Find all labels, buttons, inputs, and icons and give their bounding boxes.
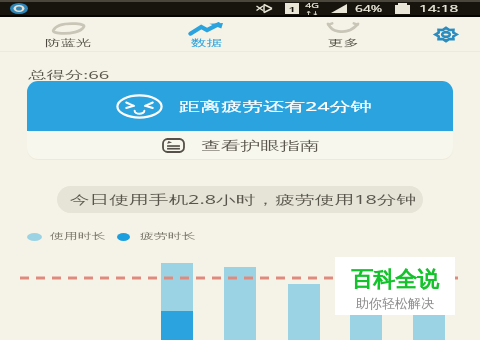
staticText: 今日使用手机2.8小时，疲劳使用18分钟 (70, 191, 416, 208)
staticText: 4G (305, 1, 320, 10)
staticText: 百科全说 (351, 266, 439, 294)
button[interactable]: 更多 (298, 18, 388, 51)
staticText: 查看护眼指南 (201, 138, 321, 153)
button[interactable]: 设置 (428, 22, 464, 46)
staticText: 使用时长 (50, 231, 107, 242)
button[interactable]: 今日使用手机2.8小时，疲劳使用18分钟 (57, 186, 423, 213)
button[interactable]: 数据 (161, 18, 251, 51)
staticText: 数据 (191, 37, 222, 49)
button[interactable]: 防蓝光 (23, 18, 113, 51)
staticText: 助你轻松解决 (356, 295, 434, 311)
staticText: ↑↓ (305, 10, 320, 16)
staticText: 更多 (328, 37, 359, 49)
staticText: 64% (355, 3, 382, 15)
button[interactable]: 距离疲劳还有24分钟 (27, 81, 453, 131)
staticText: 14:18 (419, 2, 459, 15)
staticText: 总得分:66 (28, 67, 111, 83)
staticText: 1 (288, 4, 297, 14)
staticText: 距离疲劳还有24分钟 (179, 97, 372, 115)
staticText: 疲劳时长 (140, 231, 197, 242)
button[interactable]: 查看护眼指南 (27, 131, 453, 159)
staticText: 防蓝光 (45, 37, 92, 49)
